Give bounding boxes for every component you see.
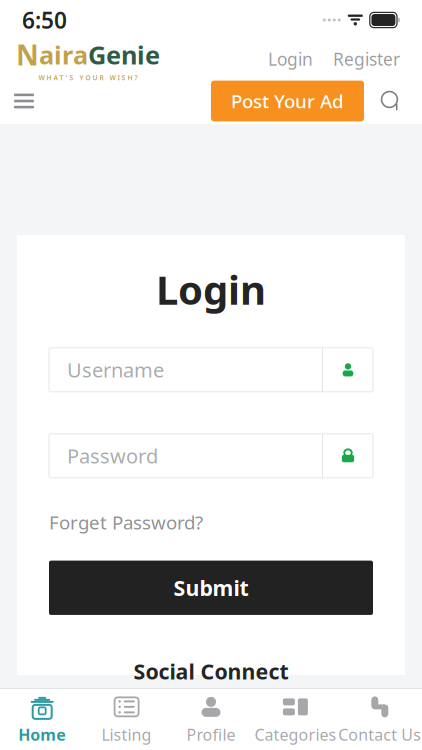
button[interactable]: Post Your Ad [211, 81, 364, 121]
staticText: Post Your Ad [231, 89, 344, 113]
staticText: Profile [186, 724, 235, 745]
button[interactable]: Categories [253, 686, 338, 750]
button[interactable]: Contact Us [338, 686, 422, 750]
button[interactable]: Listing [84, 686, 169, 750]
button[interactable]: Register [323, 41, 410, 76]
button[interactable]: Forget Password? [49, 506, 203, 539]
staticText: Submit [173, 574, 248, 602]
staticText: Home [18, 724, 66, 745]
staticText: Forget Password? [49, 510, 203, 535]
staticText: Genie [88, 38, 160, 71]
button[interactable]: Search [364, 82, 418, 120]
button[interactable]: Home [0, 686, 84, 750]
staticText: Contact Us [338, 724, 421, 745]
staticText: W H A T ' S Y O U R W I S H ? [38, 73, 137, 82]
button[interactable]: Login [258, 41, 323, 76]
button[interactable]: Submit [49, 561, 373, 615]
staticText: 6:50 [22, 5, 67, 35]
staticText: Register [333, 47, 400, 70]
staticText: Social Connect [133, 657, 288, 685]
staticText: Listing [102, 724, 152, 745]
button[interactable]: Menu [0, 84, 48, 118]
staticText: Login [268, 47, 313, 70]
staticText: Password [67, 443, 158, 469]
staticText: aira [39, 38, 88, 71]
staticText: N [16, 36, 39, 73]
staticText: Categories [254, 724, 336, 745]
button[interactable]: Profile [169, 686, 253, 750]
staticText: Login [156, 263, 266, 316]
staticText: Username [67, 357, 164, 383]
